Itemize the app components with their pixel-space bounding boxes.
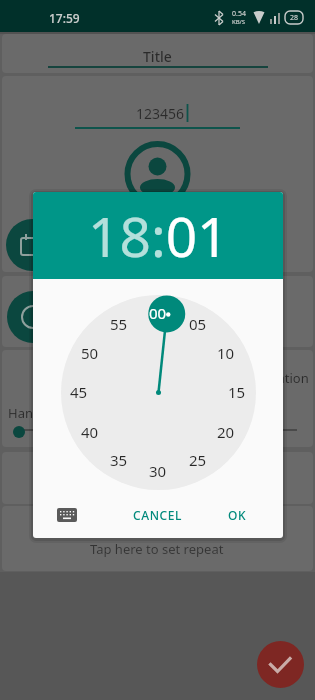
staticText: 28 xyxy=(290,13,299,23)
staticText: Title xyxy=(143,47,172,66)
staticText: Tap here to set repeat xyxy=(90,540,224,558)
button[interactable] xyxy=(2,34,313,73)
staticText: 123456 xyxy=(136,104,185,123)
staticText: KB/S xyxy=(232,18,246,26)
staticText: 55 xyxy=(110,314,128,334)
staticText: OK xyxy=(228,507,247,523)
staticText: 15 xyxy=(228,382,246,402)
staticText: Select vibration xyxy=(215,369,309,387)
button[interactable] xyxy=(2,506,313,571)
staticText: Handle vibration xyxy=(8,404,110,422)
button[interactable]: OK xyxy=(212,501,262,529)
button[interactable] xyxy=(257,641,304,688)
staticText: 25 xyxy=(189,450,207,470)
staticText: 50 xyxy=(81,343,99,363)
staticText: 10 xyxy=(217,343,235,363)
staticText: CANCEL xyxy=(133,507,183,523)
staticText: 45 xyxy=(70,382,88,402)
staticText: 35 xyxy=(110,450,128,470)
staticText: 20 xyxy=(217,422,235,442)
staticText: 0.54 xyxy=(232,9,246,19)
button[interactable]: CANCEL xyxy=(108,501,208,529)
button[interactable] xyxy=(53,501,81,529)
staticText: 17:59 xyxy=(49,10,80,26)
staticText: 00 xyxy=(149,303,167,323)
staticText: 40 xyxy=(81,422,99,442)
staticText: 30 xyxy=(149,461,167,481)
staticText: 05 xyxy=(189,314,207,334)
staticText: 18:01 xyxy=(88,198,229,273)
